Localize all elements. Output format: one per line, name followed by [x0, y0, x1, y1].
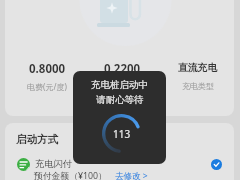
- staticText: 0.8000: [29, 61, 66, 74]
- staticText: 预付金额（¥100）: [34, 170, 107, 180]
- staticText: 113: [113, 127, 131, 141]
- staticText: 直流充电: [178, 62, 218, 74]
- staticText: 充电闪付: [35, 158, 72, 170]
- other: Selected: [211, 159, 222, 170]
- button[interactable]: 充电闪付: [5, 155, 234, 173]
- staticText: 充电桩启动中: [91, 79, 148, 91]
- button[interactable]: 去修改 >: [115, 170, 148, 180]
- staticText: 充电类型: [182, 81, 214, 91]
- staticText: 请耐心等待: [96, 94, 144, 106]
- staticText: 电费(元/度): [27, 81, 67, 92]
- staticText: 启动方式: [16, 133, 58, 146]
- staticText: 服务费(元/度): [98, 81, 146, 92]
- staticText: 0.2200: [104, 61, 141, 74]
